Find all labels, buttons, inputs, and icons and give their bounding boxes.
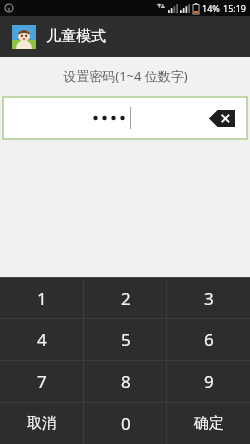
staticText: 15:19	[223, 2, 247, 14]
button[interactable]: 1	[0, 278, 84, 318]
staticText: 3	[204, 287, 214, 310]
staticText: 取消	[27, 414, 57, 433]
button[interactable]: Delete	[3, 97, 247, 139]
button[interactable]: 7	[0, 361, 84, 402]
button[interactable]: 确定	[167, 403, 250, 444]
staticText: 4	[37, 328, 47, 351]
button[interactable]: 3	[167, 278, 250, 318]
staticText: 2	[121, 287, 131, 310]
button[interactable]: 5	[84, 319, 167, 360]
button[interactable]: 9	[167, 361, 250, 402]
staticText: 设置密码(1~4 位数字)	[63, 67, 188, 85]
button[interactable]: 4	[0, 319, 84, 360]
staticText: 1	[37, 287, 47, 310]
staticText: 6	[204, 328, 214, 351]
button[interactable]: 8	[84, 361, 167, 402]
staticText: 7	[37, 370, 47, 393]
staticText: 儿童模式	[46, 27, 106, 46]
button[interactable]: 取消	[0, 403, 84, 444]
staticText: 9	[204, 370, 214, 393]
button[interactable]: 0	[84, 403, 167, 444]
staticText: 确定	[194, 414, 224, 433]
staticText: 14%	[202, 2, 220, 14]
staticText: 5	[121, 328, 131, 351]
staticText: 8	[121, 370, 131, 393]
button[interactable]: Delete	[209, 110, 235, 127]
button[interactable]: 6	[167, 319, 250, 360]
staticText: 0	[121, 412, 131, 435]
button[interactable]: 2	[84, 278, 167, 318]
